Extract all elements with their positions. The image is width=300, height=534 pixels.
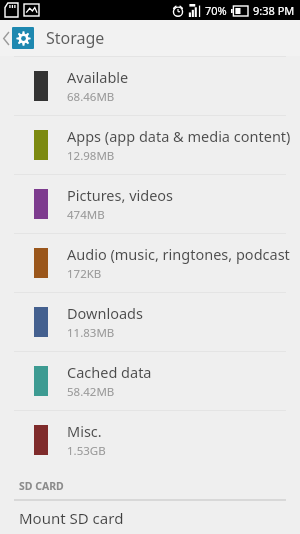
staticText: Apps (app data & media content) — [67, 126, 290, 146]
button[interactable]: Pictures, videos — [0, 175, 300, 233]
button[interactable]: Mount SD card — [0, 501, 300, 534]
staticText: Pictures, videos — [67, 185, 174, 205]
staticText: SD CARD — [19, 479, 64, 493]
staticText: Audio (music, ringtones, podcasts, etc.) — [67, 244, 290, 264]
button[interactable]: Audio (music, ringtones, podcasts, etc.) — [0, 234, 300, 292]
staticText: 68.46MB — [67, 89, 115, 105]
staticText: 9:38 PM — [253, 3, 295, 18]
staticText: 12.98MB — [67, 148, 115, 164]
staticText: 58.42MB — [67, 384, 115, 400]
staticText: 474MB — [67, 207, 105, 223]
button[interactable]: Available — [0, 57, 300, 115]
staticText: 70% — [205, 3, 227, 18]
button[interactable]: Downloads — [0, 293, 300, 351]
button[interactable]: Misc. — [0, 411, 300, 469]
staticText: Mount SD card — [19, 508, 124, 528]
button[interactable]: Apps (app data & media content) — [0, 116, 300, 174]
staticText: Available — [67, 67, 129, 87]
staticText: Misc. — [67, 421, 102, 441]
staticText: Storage — [46, 27, 105, 49]
staticText: 172KB — [67, 266, 102, 282]
staticText: 1.53GB — [67, 443, 106, 459]
staticText: Cached data — [67, 362, 152, 382]
staticText: 11.83MB — [67, 325, 115, 341]
button[interactable]: Cached data — [0, 352, 300, 410]
staticText: Downloads — [67, 303, 143, 323]
button[interactable]: Back — [0, 20, 36, 56]
